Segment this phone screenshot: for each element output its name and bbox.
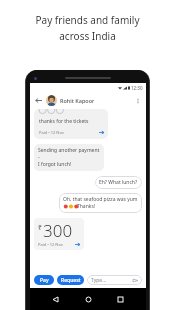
button[interactable]: Oh, that seafood pizza was yum [59,193,142,213]
staticText: Paid • 12 Nov [38,242,63,247]
staticText: Pay friends and family [35,13,140,27]
staticText: across India [59,29,116,43]
staticText: ₹ [38,223,43,233]
staticText: Pay [40,277,49,284]
staticText: 12:30 [131,85,143,91]
staticText: Request [61,277,81,284]
button[interactable]: thanks for the tickets [34,109,108,139]
button[interactable]: ₹ [34,218,84,250]
staticText: Sending another payment - [38,147,100,161]
staticText: Paid • 12 Nov [39,130,64,135]
staticText: Eh? What lunch? [99,179,138,186]
staticText: thanks for the tickets [39,118,89,125]
button[interactable]: Back [49,293,62,306]
button[interactable]: Request [57,275,84,285]
button[interactable]: Pay [34,275,54,285]
button[interactable]: Home [82,293,95,306]
button[interactable]: Sending another payment - [34,144,104,171]
staticText: 300 [43,219,73,242]
staticText: Thanks! [77,203,96,210]
staticText: Rohit Kapoor [60,97,95,104]
button[interactable]: Type… [87,275,142,285]
button[interactable]: Back [33,95,44,106]
button[interactable]: More options [132,95,143,106]
staticText: I forgot lunch! [38,161,72,168]
button[interactable]: Eh? What lunch? [95,176,142,189]
button[interactable]: Recent apps [114,293,127,306]
staticText: Type… [91,277,107,284]
staticText: Oh, that seafood pizza was yum [63,196,138,203]
